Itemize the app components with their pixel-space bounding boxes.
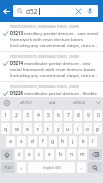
button[interactable]: d [28, 136, 37, 147]
button[interactable]: 7 [64, 110, 72, 121]
button[interactable]: More suggestions [93, 97, 103, 108]
button[interactable]: did [39, 97, 66, 108]
button[interactable]: 6 [54, 110, 62, 121]
staticText: w [15, 126, 19, 133]
button[interactable]: 9 [84, 123, 92, 134]
staticText: 3 [29, 123, 31, 126]
staticText: u [66, 126, 70, 133]
button[interactable]: l [89, 136, 97, 147]
staticText: 1 [7, 123, 9, 126]
staticText: 0 [99, 123, 101, 126]
staticText: 7 [69, 123, 71, 126]
button[interactable]: f [39, 136, 47, 147]
button[interactable]: PROSTHODONTICS, REMOVABLE (D5000 - D5899… [0, 82, 103, 97]
button[interactable]: Shift [1, 149, 13, 160]
staticText: r [37, 126, 40, 133]
button[interactable]: d52 [13, 5, 98, 17]
staticText: k [82, 138, 85, 145]
staticText: 9 [89, 123, 91, 126]
staticText: e [26, 126, 29, 133]
button[interactable]: 8 [74, 110, 82, 121]
button[interactable]: 4 [34, 123, 42, 134]
staticText: f [42, 138, 44, 145]
button[interactable]: 1 [1, 110, 10, 121]
button[interactable]: c [35, 149, 43, 160]
staticText: 2 [15, 112, 18, 119]
staticText: 8 [77, 112, 80, 119]
staticText: 9 [87, 112, 90, 119]
button[interactable]: 1 [1, 123, 10, 134]
button[interactable]: Search [88, 162, 102, 173]
button[interactable]: 6 [54, 123, 62, 134]
button[interactable]: x [25, 149, 33, 160]
staticText: 2 [18, 123, 20, 126]
button[interactable]: 5 [44, 123, 52, 134]
staticText: n [70, 151, 74, 158]
staticText: 1 [4, 112, 7, 119]
staticText: did [49, 100, 56, 106]
button[interactable]: , [17, 162, 26, 173]
button[interactable]: d5151 [13, 97, 39, 108]
button[interactable]: 5 [44, 110, 52, 121]
staticText: ?123 [4, 165, 12, 170]
staticText: j [72, 138, 74, 145]
button[interactable]: Backspace [89, 149, 102, 160]
button[interactable]: 4 [34, 110, 42, 121]
staticText: PROSTHODONTICS, REMOVABLE (D5000 - D5899… [10, 85, 80, 89]
button[interactable]: k [79, 136, 87, 147]
staticText: PROSTHODONTICS, REMOVABLE (D5000 - D5899… [10, 25, 80, 29]
button[interactable]: d5522 [66, 97, 93, 108]
button[interactable]: 8 [74, 123, 82, 134]
staticText: v [48, 151, 51, 158]
button[interactable]: English (US) [28, 162, 75, 173]
staticText: y [57, 126, 60, 133]
staticText: 0 [97, 112, 100, 119]
staticText: D5213 maxillary partial denture - cast m… [10, 30, 99, 48]
button[interactable]: Back [0, 0, 13, 22]
button[interactable]: 2 [12, 110, 21, 121]
staticText: 7 [67, 112, 70, 119]
staticText: p [96, 126, 100, 133]
button[interactable]: PROSTHODONTICS, REMOVABLE (D5000 - D5899… [0, 22, 103, 52]
staticText: q [4, 126, 8, 133]
button[interactable]: 7 [64, 123, 72, 134]
staticText: d [31, 138, 35, 145]
button[interactable]: 2 [12, 123, 21, 134]
button[interactable]: 0 [94, 123, 102, 134]
button[interactable]: 9 [84, 110, 92, 121]
button[interactable]: b [56, 149, 65, 160]
button[interactable]: Symbols [1, 162, 15, 173]
button[interactable]: j [69, 136, 77, 147]
staticText: l [92, 138, 94, 145]
button[interactable]: n [67, 149, 76, 160]
button[interactable]: s [17, 136, 26, 147]
staticText: D5214 mandibular partial denture - cast … [10, 60, 99, 78]
button[interactable]: Google [0, 97, 13, 108]
staticText: D5226 mandibular partial denture - flexi… [10, 90, 99, 97]
staticText: 3 [26, 112, 29, 119]
button[interactable]: h [59, 136, 67, 147]
staticText: b [59, 151, 63, 158]
button[interactable]: 3 [23, 123, 32, 134]
staticText: 8 [79, 123, 81, 126]
staticText: 4 [37, 112, 40, 119]
button[interactable]: z [15, 149, 23, 160]
staticText: d52 [26, 7, 38, 16]
staticText: m [80, 151, 85, 158]
button[interactable]: m [78, 149, 87, 160]
staticText: x [28, 151, 31, 158]
button[interactable]: Clear [74, 7, 82, 15]
button[interactable]: Voice search [86, 7, 94, 15]
staticText: d5522 [73, 100, 86, 106]
staticText: h [61, 138, 65, 145]
button[interactable]: g [49, 136, 57, 147]
button[interactable]: 3 [23, 110, 32, 121]
button[interactable]: v [45, 149, 54, 160]
button[interactable]: a [6, 136, 15, 147]
staticText: d5151 [20, 100, 33, 106]
staticText: PROSTHODONTICS, REMOVABLE (D5000 - D5899… [10, 55, 80, 59]
staticText: s [20, 138, 23, 145]
button[interactable]: 0 [94, 110, 102, 121]
button[interactable]: PROSTHODONTICS, REMOVABLE (D5000 - D5899… [0, 52, 103, 82]
button[interactable]: . [77, 162, 86, 173]
